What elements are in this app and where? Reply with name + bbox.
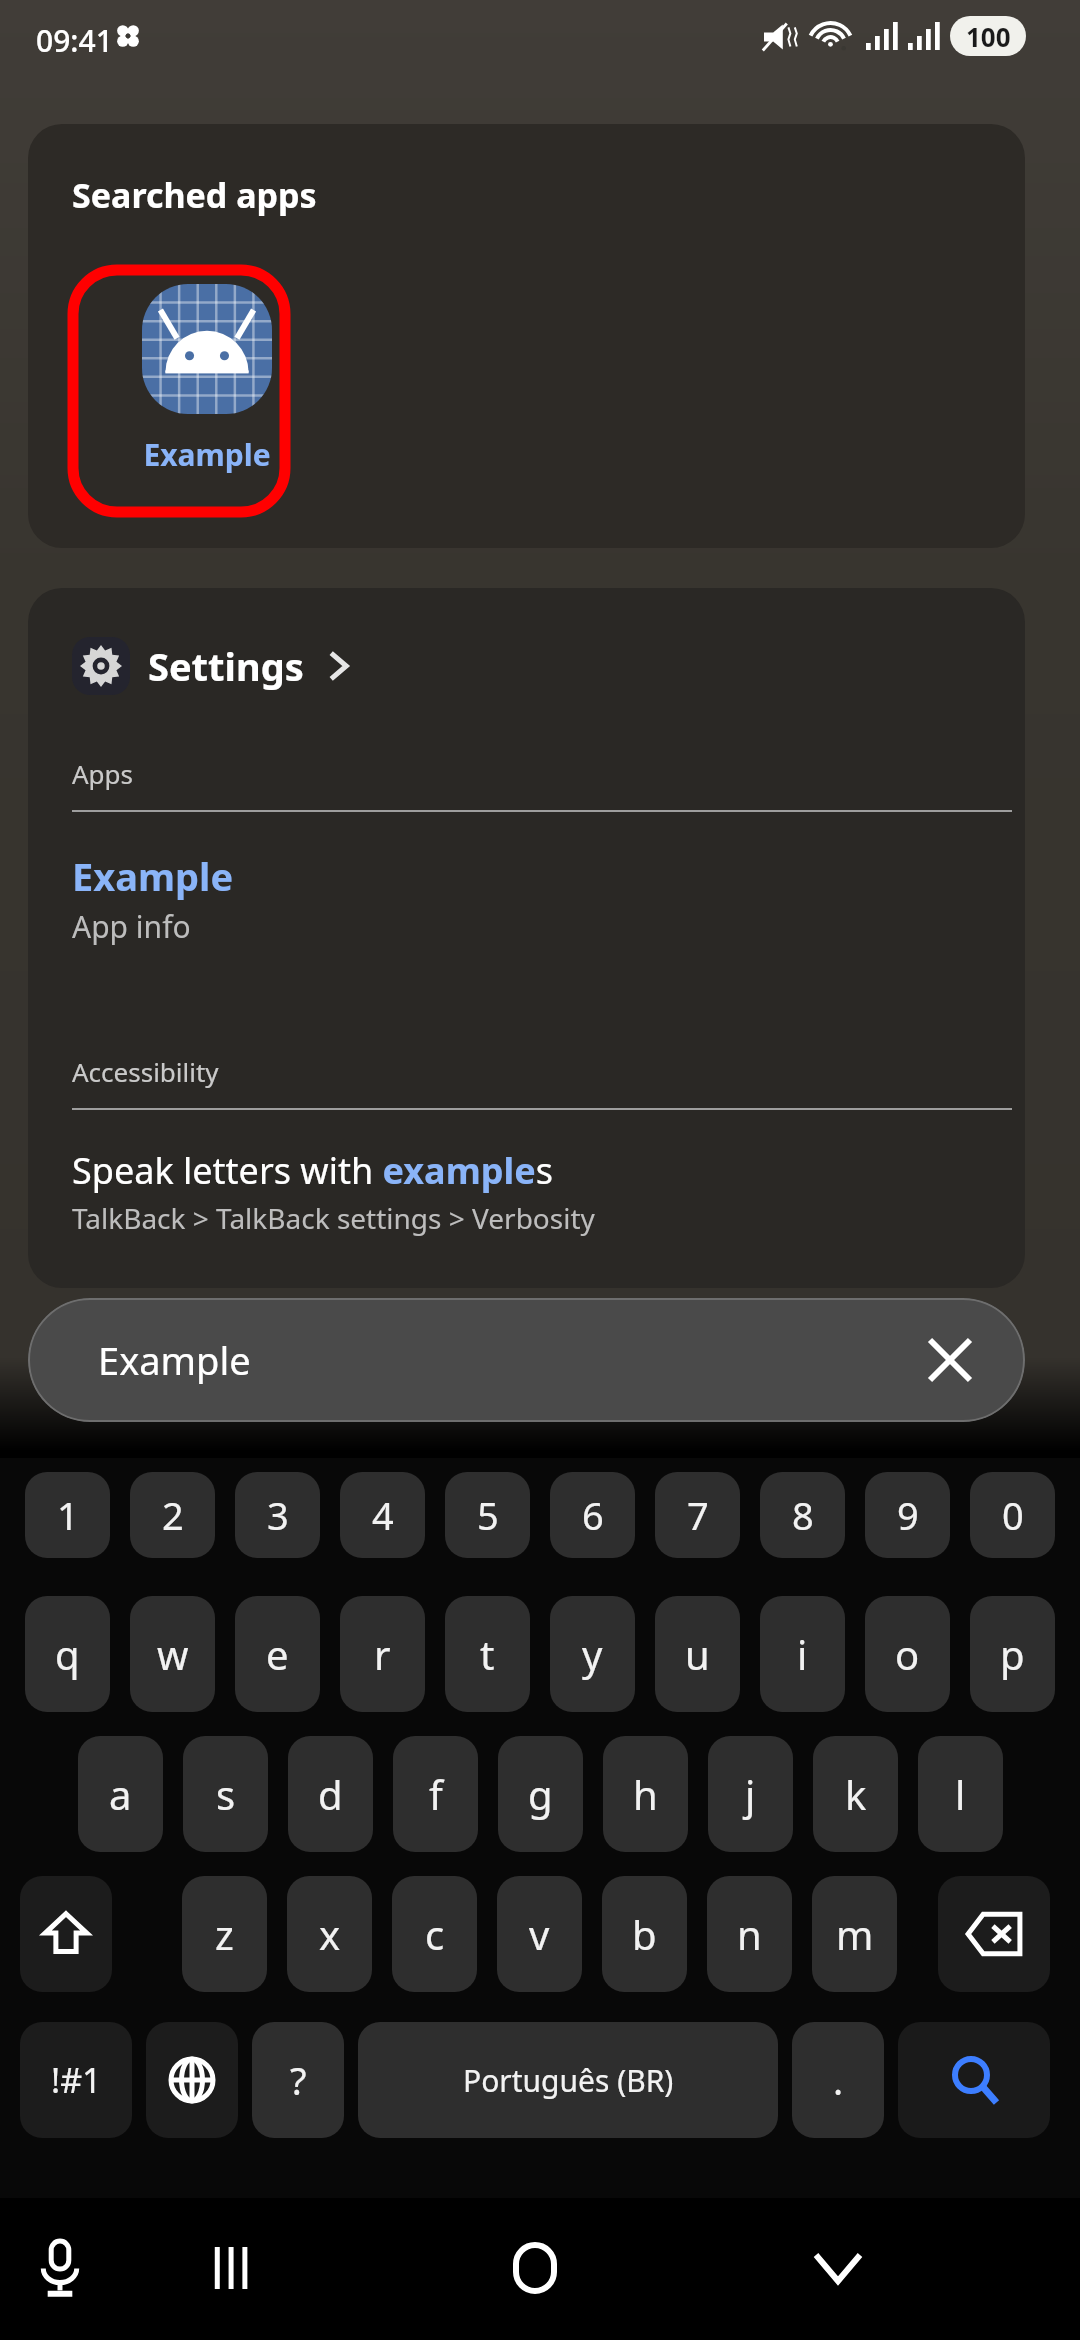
button[interactable]: d (288, 1736, 373, 1852)
staticText: x (319, 1907, 341, 1961)
button[interactable]: Settings (72, 630, 352, 702)
staticText: z (215, 1907, 234, 1961)
button[interactable]: p (970, 1596, 1055, 1712)
button[interactable]: a (78, 1736, 163, 1852)
staticText: Settings (148, 640, 304, 692)
staticText: 09:41 (36, 20, 113, 61)
staticText: c (425, 1907, 445, 1961)
staticText: Example (100, 434, 314, 475)
button[interactable]: Speak letters with examples (72, 1146, 1012, 1237)
staticText: 5 (477, 1489, 499, 1541)
staticText: y (582, 1627, 603, 1681)
staticText: TalkBack > TalkBack settings > Verbosity (72, 1199, 595, 1237)
button[interactable]: o (865, 1596, 950, 1712)
staticText: Português (BR) (463, 2060, 674, 2101)
button[interactable]: 5 (445, 1472, 530, 1558)
staticText: s (216, 1767, 236, 1821)
button[interactable]: h (603, 1736, 688, 1852)
button[interactable]: Backspace (938, 1876, 1050, 1992)
button[interactable]: Home (485, 2218, 585, 2318)
button[interactable]: s (183, 1736, 268, 1852)
button[interactable]: 6 (550, 1472, 635, 1558)
button[interactable]: 1 (25, 1472, 110, 1558)
button[interactable]: 9 (865, 1472, 950, 1558)
button[interactable]: Português (BR) (358, 2022, 778, 2138)
staticText: q (55, 1627, 80, 1681)
button[interactable]: Recent apps (182, 2218, 282, 2318)
staticText: Speak letters with examples (72, 1146, 553, 1195)
staticText: r (374, 1627, 391, 1681)
staticText: l (955, 1767, 966, 1821)
button[interactable]: ? (252, 2022, 344, 2138)
staticText: o (895, 1627, 920, 1681)
staticText: 6 (582, 1489, 604, 1541)
staticText: 1 (57, 1489, 79, 1541)
button[interactable]: Search (898, 2022, 1050, 2138)
staticText: e (266, 1627, 289, 1681)
button[interactable]: 2 (130, 1472, 215, 1558)
staticText: w (157, 1627, 189, 1681)
button[interactable]: l (918, 1736, 1003, 1852)
button[interactable]: . (792, 2022, 884, 2138)
button[interactable]: m (812, 1876, 897, 1992)
button[interactable]: k (813, 1736, 898, 1852)
button[interactable]: g (498, 1736, 583, 1852)
button[interactable]: Example (100, 268, 314, 516)
staticText: p (1000, 1627, 1025, 1681)
button[interactable]: Example (72, 850, 1012, 947)
button[interactable]: 3 (235, 1472, 320, 1558)
staticText: t (480, 1627, 495, 1681)
staticText: Searched apps (72, 172, 317, 218)
button[interactable]: j (708, 1736, 793, 1852)
staticText: k (845, 1767, 867, 1821)
button[interactable]: w (130, 1596, 215, 1712)
button[interactable]: z (182, 1876, 267, 1992)
button[interactable]: i (760, 1596, 845, 1712)
staticText: 3 (267, 1489, 289, 1541)
staticText: 4 (372, 1489, 394, 1541)
button[interactable]: !#1 (20, 2022, 132, 2138)
button[interactable]: u (655, 1596, 740, 1712)
staticText: 8 (792, 1489, 814, 1541)
staticText: f (429, 1767, 443, 1821)
button[interactable]: 8 (760, 1472, 845, 1558)
staticText: u (685, 1627, 710, 1681)
staticText: v (529, 1907, 550, 1961)
staticText: 0 (1002, 1489, 1024, 1541)
button[interactable]: Example (28, 1298, 1025, 1422)
button[interactable]: x (287, 1876, 372, 1992)
button[interactable]: n (707, 1876, 792, 1992)
button[interactable]: f (393, 1736, 478, 1852)
button[interactable]: y (550, 1596, 635, 1712)
staticText: Example (98, 1334, 251, 1386)
button[interactable]: b (602, 1876, 687, 1992)
button[interactable]: 0 (970, 1472, 1055, 1558)
staticText: App info (72, 906, 191, 947)
staticText: 7 (687, 1489, 709, 1541)
button[interactable]: Voice input (10, 2218, 110, 2318)
button[interactable] (100, 288, 316, 536)
button[interactable]: 4 (340, 1472, 425, 1558)
staticText: a (109, 1767, 132, 1821)
staticText: 9 (897, 1489, 919, 1541)
staticText: j (745, 1767, 756, 1821)
staticText: b (632, 1907, 657, 1961)
button[interactable]: e (235, 1596, 320, 1712)
button[interactable]: c (392, 1876, 477, 1992)
staticText: d (318, 1767, 343, 1821)
button[interactable]: r (340, 1596, 425, 1712)
staticText: Apps (72, 756, 134, 791)
button[interactable]: Shift (20, 1876, 112, 1992)
button[interactable]: Change language (146, 2022, 238, 2138)
button[interactable]: Hide keyboard (788, 2218, 888, 2318)
button[interactable]: q (25, 1596, 110, 1712)
button[interactable]: t (445, 1596, 530, 1712)
button[interactable]: 7 (655, 1472, 740, 1558)
button[interactable]: v (497, 1876, 582, 1992)
staticText: !#1 (51, 2057, 102, 2103)
staticText: 2 (162, 1489, 184, 1541)
staticText: Accessibility (72, 1054, 219, 1089)
staticText: h (633, 1767, 658, 1821)
staticText: m (836, 1907, 874, 1961)
button[interactable]: Clear search (917, 1327, 983, 1393)
